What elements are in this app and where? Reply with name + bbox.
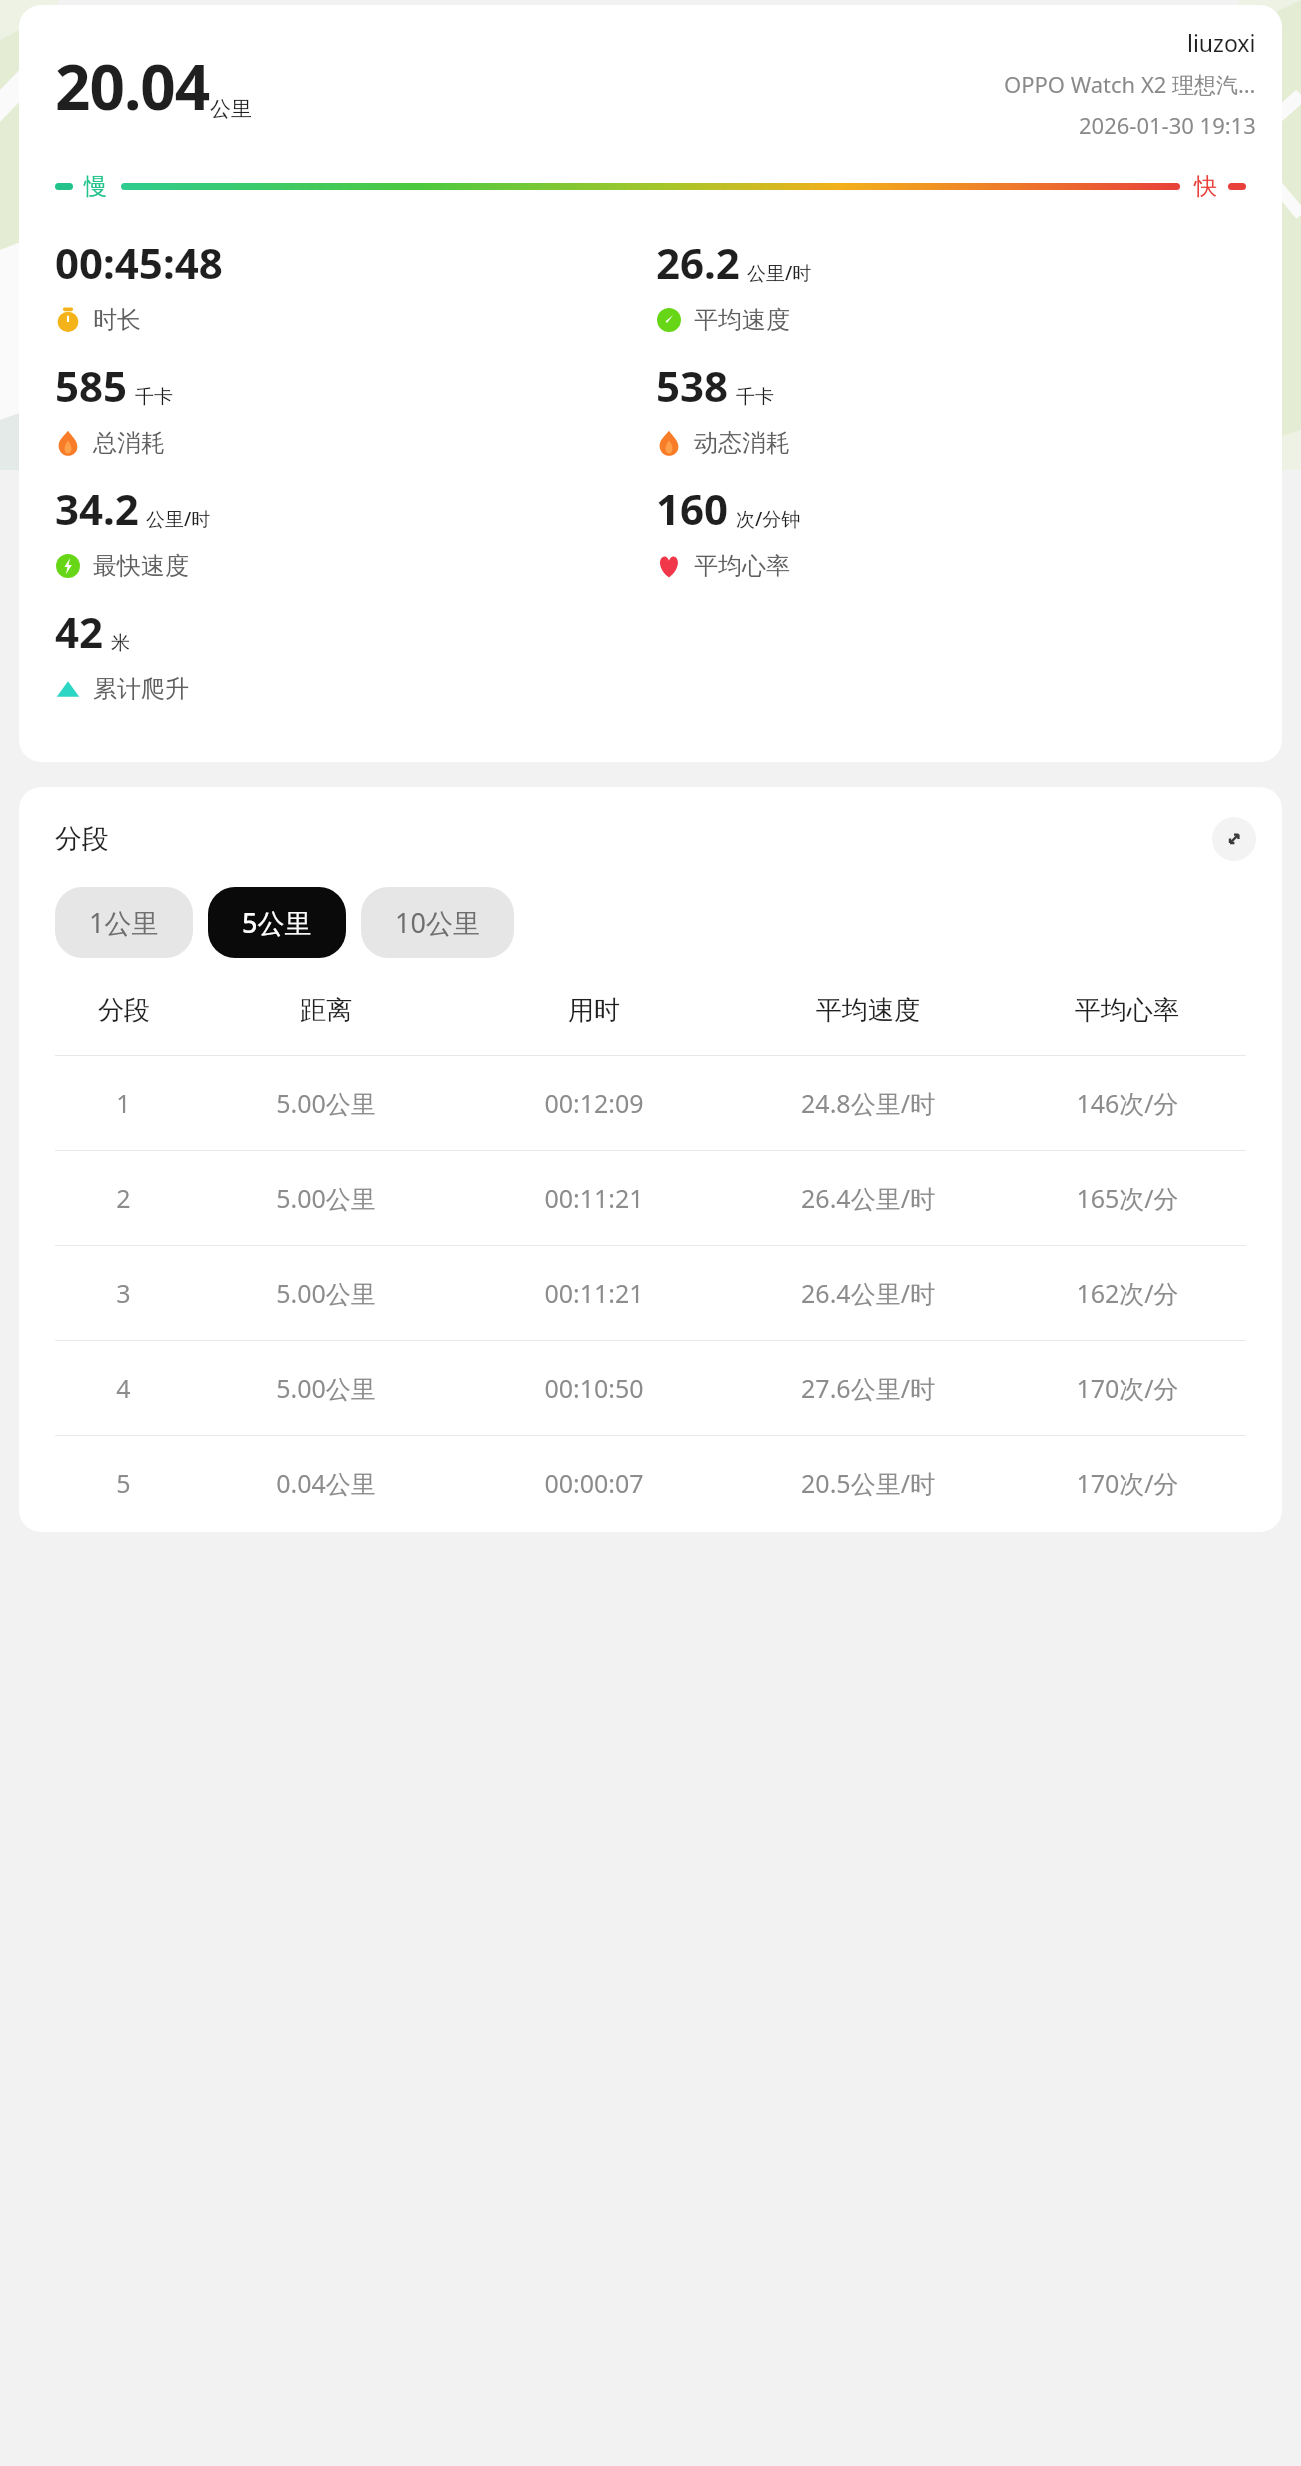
staticText: 5.00公里 [276,1371,376,1405]
button[interactable]: 10公里 [361,887,514,958]
staticText: 0.04公里 [276,1466,376,1500]
staticText: 538 [656,357,729,414]
staticText: 00:12:09 [544,1086,644,1120]
staticText: 3 [116,1276,131,1310]
staticText: 165次/分 [1076,1181,1179,1215]
staticText: 00:45:48 [55,234,223,291]
staticText: 170次/分 [1076,1371,1179,1405]
staticText: 次/分钟 [736,506,801,532]
button[interactable]: 5 [19,1436,1282,1530]
staticText: 160 [656,480,729,537]
staticText: 00:11:21 [544,1276,644,1310]
staticText: 慢 [84,172,107,201]
staticText: 170次/分 [1076,1466,1179,1500]
staticText: 00:11:21 [544,1181,644,1215]
staticText: 2 [116,1181,131,1215]
staticText: 累计爬升 [93,674,189,704]
staticText: 距离 [300,994,352,1027]
staticText: 平均速度 [816,994,920,1027]
staticText: 千卡 [135,385,173,409]
staticText: 千卡 [736,385,774,409]
staticText: 2026-01-30 19:13 [1079,110,1256,140]
button[interactable]: 538 [656,357,790,458]
button[interactable]: 34.2 [55,480,211,581]
staticText: 平均心率 [1075,994,1179,1027]
staticText: 分段 [55,822,109,856]
button[interactable]: 2 [19,1151,1282,1245]
staticText: 00:10:50 [544,1371,644,1405]
staticText: 动态消耗 [694,428,790,458]
button[interactable]: 展开 [1212,817,1256,861]
staticText: 5公里 [242,904,312,941]
staticText: 米 [111,631,130,655]
staticText: 20.04 [55,44,210,128]
staticText: 最快速度 [93,551,189,581]
staticText: 1 [116,1086,131,1120]
staticText: 公里 [210,96,252,122]
staticText: 5.00公里 [276,1276,376,1310]
staticText: 分段 [98,994,150,1027]
button[interactable]: 160 [656,480,801,581]
staticText: 公里/时 [146,506,211,532]
staticText: 10公里 [395,904,480,941]
staticText: 平均速度 [694,305,790,335]
button[interactable]: 42 [55,603,189,704]
staticText: 585 [55,357,128,414]
staticText: 时长 [93,305,141,335]
staticText: 00:00:07 [544,1466,644,1500]
staticText: 26.4公里/时 [801,1181,935,1215]
button[interactable]: 00:45:48 [55,234,223,335]
staticText: 162次/分 [1076,1276,1179,1310]
staticText: 用时 [568,994,620,1027]
button[interactable]: 3 [19,1246,1282,1340]
button[interactable]: 1公里 [55,887,193,958]
staticText: 5.00公里 [276,1181,376,1215]
staticText: 34.2 [55,480,139,537]
staticText: 1公里 [89,904,159,941]
staticText: 26.2 [656,234,740,291]
staticText: 5.00公里 [276,1086,376,1120]
staticText: OPPO Watch X2 理想汽… [1004,69,1256,99]
staticText: liuzoxi [1187,27,1256,58]
button[interactable]: 26.2 [656,234,812,335]
staticText: 公里/时 [747,260,812,286]
staticText: 快 [1194,172,1217,201]
staticText: 146次/分 [1076,1086,1179,1120]
staticText: 平均心率 [694,551,790,581]
button[interactable]: 4 [19,1341,1282,1435]
staticText: 42 [55,603,104,660]
button[interactable]: 1 [19,1056,1282,1150]
staticText: 4 [116,1371,131,1405]
button[interactable]: 585 [55,357,173,458]
staticText: 26.4公里/时 [801,1276,935,1310]
staticText: 5 [116,1466,131,1500]
staticText: 27.6公里/时 [801,1371,935,1405]
staticText: 24.8公里/时 [801,1086,935,1120]
staticText: 20.5公里/时 [801,1466,935,1500]
button[interactable]: 5公里 [208,887,346,958]
staticText: 总消耗 [93,428,165,458]
